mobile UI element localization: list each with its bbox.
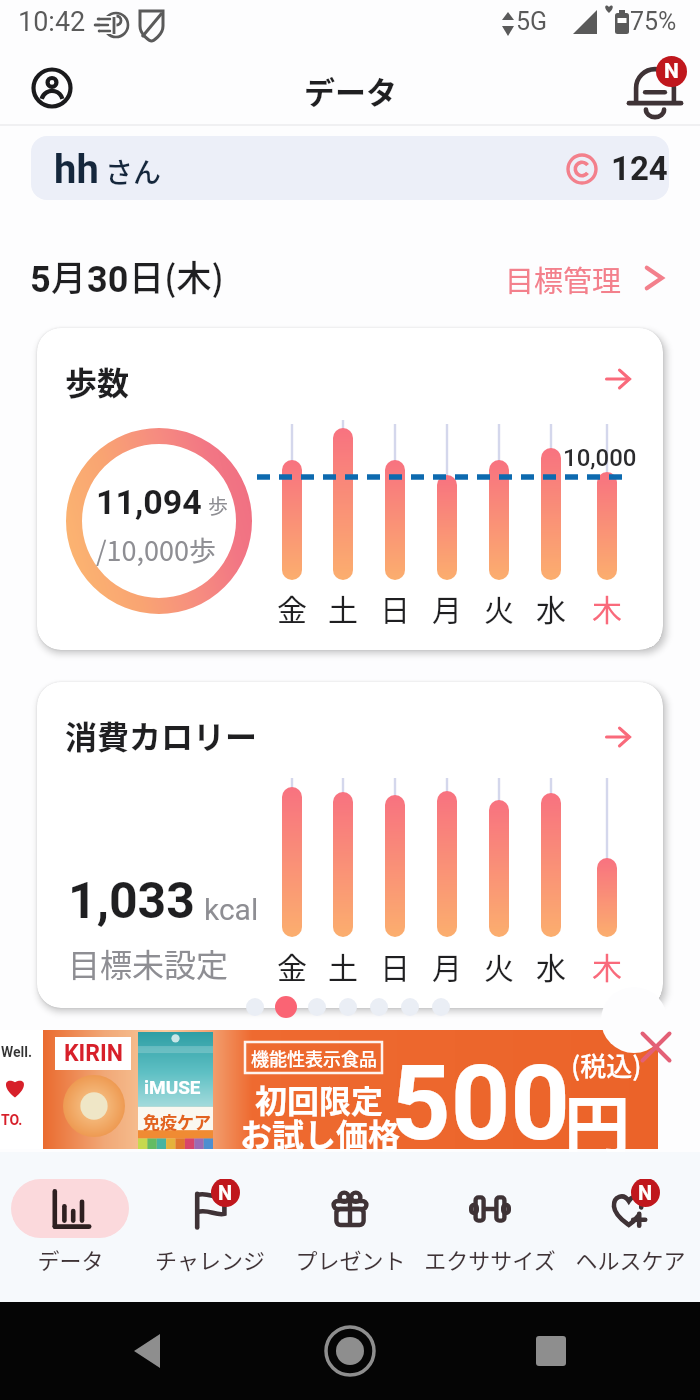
staticText: チャレンジ xyxy=(155,1243,265,1275)
staticText: 初回限定 xyxy=(255,1076,384,1122)
button[interactable]: Account xyxy=(22,58,82,118)
staticText: 木 xyxy=(592,586,622,629)
staticText: さん xyxy=(105,151,162,192)
staticText: 土 xyxy=(328,586,358,629)
staticText: お試し価格 xyxy=(240,1110,401,1156)
staticText: hh xyxy=(54,146,99,193)
staticText: 10,000 xyxy=(563,444,637,472)
staticText: 日 xyxy=(380,586,410,629)
staticText: 歩数 xyxy=(65,358,130,404)
staticText: 月 xyxy=(432,586,462,629)
button[interactable]: 消費カロリー xyxy=(37,682,663,1008)
staticText: 免疫ケア xyxy=(143,1109,211,1134)
button[interactable]: データ xyxy=(0,1152,140,1302)
staticText: Well. xyxy=(1,1044,33,1060)
staticText: 火 xyxy=(484,586,514,629)
staticText: データ xyxy=(304,68,397,113)
staticText: 金 xyxy=(277,586,307,629)
staticText: 5G xyxy=(516,7,548,36)
staticText: N xyxy=(664,59,679,84)
button[interactable]: hh xyxy=(31,136,669,200)
staticText: 10:42 xyxy=(18,6,86,38)
staticText: 500 xyxy=(391,1043,571,1162)
staticText: 124 xyxy=(611,149,668,188)
staticText: 円 xyxy=(564,1073,630,1169)
staticText: 5 xyxy=(30,259,51,301)
staticText: (税込) xyxy=(571,1046,642,1084)
button[interactable]: Notifications xyxy=(620,52,690,122)
staticText: kcal xyxy=(204,892,259,927)
staticText: 火 xyxy=(484,944,514,987)
staticText: 歩 xyxy=(208,491,228,520)
button[interactable]: N xyxy=(560,1152,700,1302)
staticText: /10,000歩 xyxy=(96,530,217,569)
button[interactable]: Close ad xyxy=(633,1024,679,1070)
staticText: iMUSE xyxy=(144,1076,201,1098)
staticText: ヘルスケア xyxy=(575,1243,686,1275)
staticText: TO. xyxy=(1,1112,23,1128)
staticText: 1,033 xyxy=(68,872,195,931)
staticText: 月 xyxy=(51,250,87,301)
staticText: 目標未設定 xyxy=(68,940,229,986)
staticText: 機能性表示食品 xyxy=(251,1045,377,1071)
staticText: 土 xyxy=(328,944,358,987)
button[interactable]: エクササイズ xyxy=(420,1152,560,1302)
staticText: 消費カロリー xyxy=(65,712,258,758)
staticText: 30 xyxy=(87,259,129,301)
staticText: 日 xyxy=(380,944,410,987)
staticText: 木 xyxy=(592,944,622,987)
button[interactable]: 歩数 xyxy=(37,328,663,650)
staticText: 水 xyxy=(536,944,566,987)
staticText: プレゼント xyxy=(295,1243,406,1275)
staticText: 75% xyxy=(630,7,677,36)
staticText: 日(木) xyxy=(129,250,224,301)
staticText: N xyxy=(218,1181,233,1204)
staticText: 11,094 xyxy=(96,482,202,522)
staticText: 金 xyxy=(277,944,307,987)
staticText: データ xyxy=(37,1243,104,1275)
button[interactable]: N xyxy=(140,1152,280,1302)
button[interactable]: Open steps detail xyxy=(593,354,643,404)
button[interactable]: KIRIN xyxy=(43,1030,658,1149)
staticText: N xyxy=(638,1181,653,1204)
staticText: 目標管理 xyxy=(505,258,622,300)
staticText: 月 xyxy=(432,944,462,987)
staticText: エクササイズ xyxy=(424,1243,556,1275)
button[interactable]: Open calories detail xyxy=(593,712,643,762)
staticText: KIRIN xyxy=(64,1040,123,1067)
button[interactable]: 目標管理 xyxy=(505,258,652,300)
staticText: 水 xyxy=(536,586,566,629)
button[interactable]: プレゼント xyxy=(280,1152,420,1302)
